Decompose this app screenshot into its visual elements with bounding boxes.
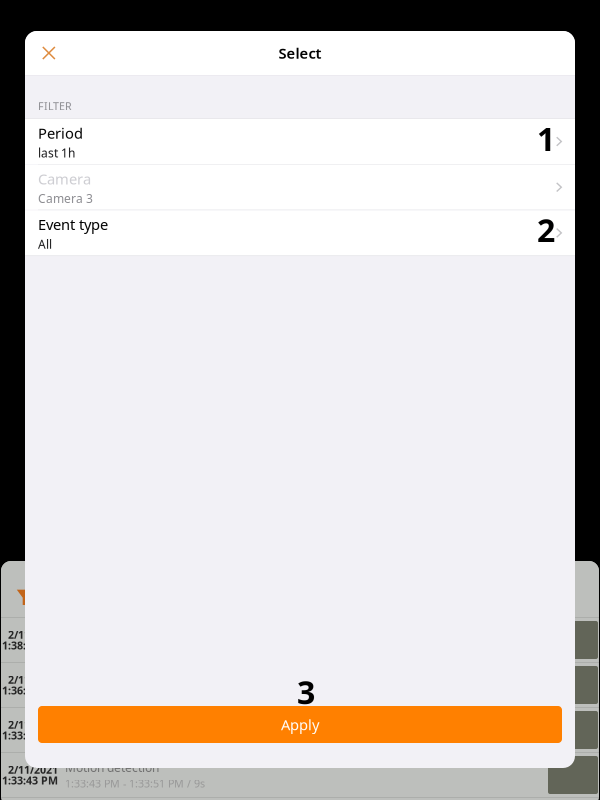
button[interactable]: Camera: [25, 165, 575, 210]
staticText: 2/11/2021: [8, 673, 58, 687]
staticText: 2/11/2021: [8, 628, 58, 642]
button[interactable]: Event type: [25, 210, 575, 255]
staticText: Event type: [38, 215, 108, 234]
staticText: 1: [537, 117, 555, 160]
staticText: 1:33:55 PM: [2, 728, 58, 742]
staticText: Camera: [38, 169, 91, 188]
staticText: 1:33:43 PM - 1:33:51 PM / 9s: [65, 776, 205, 791]
staticText: last 1h: [38, 145, 75, 161]
staticText: 3: [297, 670, 315, 713]
staticText: 1:36:04 PM: [2, 683, 58, 697]
staticText: 2/11/2021: [8, 718, 58, 732]
staticText: FILTER: [38, 99, 72, 113]
staticText: Apply: [281, 715, 319, 734]
staticText: All: [38, 236, 52, 252]
staticText: 1:38:12 PM: [2, 638, 58, 652]
staticText: Select: [278, 43, 321, 63]
staticText: Motion detection: [65, 759, 159, 775]
button[interactable]: Apply: [38, 706, 562, 743]
staticText: Period: [38, 123, 83, 143]
staticText: 2: [537, 209, 555, 251]
staticText: 1:33:55 PM - 1:34:03 PM / 8s: [65, 731, 205, 746]
staticText: Camera 3: [38, 190, 93, 206]
staticText: 1:33:43 PM: [2, 773, 58, 787]
button[interactable]: Period: [25, 119, 575, 164]
button[interactable]: Close: [25, 35, 70, 71]
staticText: 2/11/2021: [8, 763, 58, 777]
